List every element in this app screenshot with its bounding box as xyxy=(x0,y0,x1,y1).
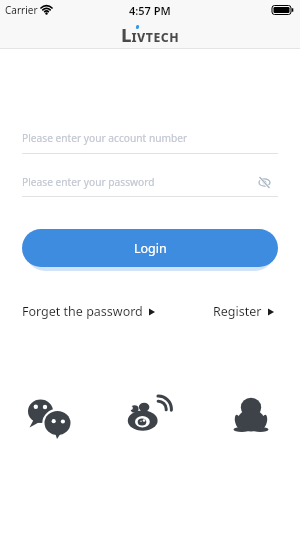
button[interactable]: Please enter your password xyxy=(22,175,278,189)
button[interactable] xyxy=(258,177,271,188)
button[interactable] xyxy=(24,393,70,439)
button[interactable] xyxy=(125,393,171,439)
staticText: Please enter your password xyxy=(22,175,155,189)
staticText: Forget the password xyxy=(22,303,143,320)
button[interactable] xyxy=(226,393,272,439)
button[interactable]: Login xyxy=(22,229,278,267)
staticText: Please enter your account number xyxy=(22,131,188,145)
staticText: Login xyxy=(134,240,167,257)
staticText: Carrier xyxy=(5,3,38,17)
button[interactable]: Please enter your account number xyxy=(22,131,278,145)
button[interactable]: Register xyxy=(213,303,274,320)
staticText: Register xyxy=(213,303,262,320)
staticText: 4:57 PM xyxy=(129,3,171,18)
staticText: LIVTECH xyxy=(121,22,180,47)
button[interactable]: Forget the password xyxy=(22,303,155,320)
